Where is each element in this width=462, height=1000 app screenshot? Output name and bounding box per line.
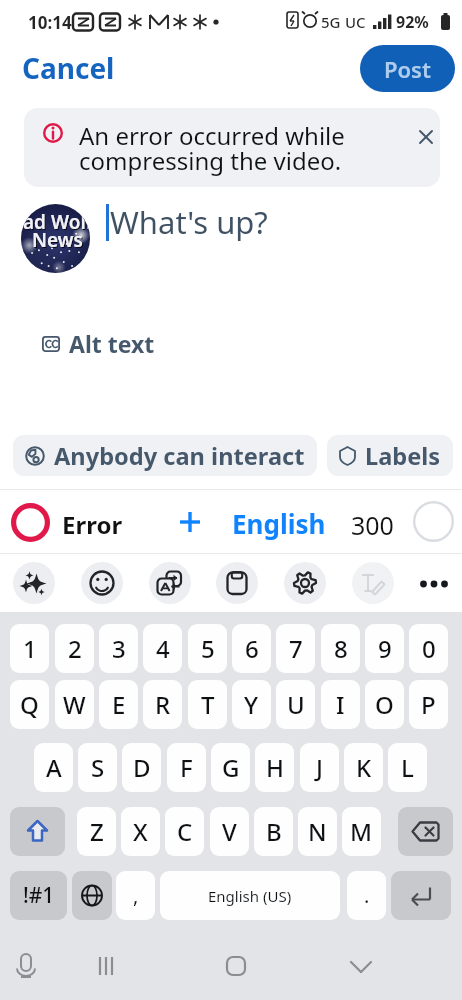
button[interactable]: 7 [276, 624, 315, 673]
button[interactable]: AI suggestions [13, 562, 55, 604]
staticText: Cancel [22, 49, 115, 87]
staticText: Post [384, 54, 431, 84]
staticText: 5G [321, 12, 341, 32]
button[interactable]: Avatar [21, 204, 90, 273]
staticText: N [308, 815, 327, 848]
staticText: X [133, 815, 148, 848]
button[interactable]: P [409, 680, 448, 729]
staticText: 4 [156, 632, 170, 665]
button[interactable]: Cancel [20, 47, 117, 89]
staticText: News [32, 227, 90, 253]
button[interactable]: Labels [327, 435, 453, 476]
button[interactable]: Rich text [352, 562, 394, 604]
button[interactable]: back [398, 807, 453, 856]
staticText: U [287, 688, 305, 721]
button[interactable]: I [321, 680, 360, 729]
button[interactable]: 5 [188, 624, 227, 673]
button[interactable]: 8 [321, 624, 360, 673]
staticText: W [63, 688, 86, 721]
staticText: 2 [68, 632, 82, 665]
button[interactable]: D [122, 743, 161, 792]
staticText: V [222, 815, 237, 848]
button[interactable]: Dismiss error [412, 123, 440, 151]
button[interactable]: Post [360, 45, 455, 92]
button[interactable]: 0 [409, 624, 448, 673]
button[interactable]: 1 [10, 624, 49, 673]
button[interactable]: Y [232, 680, 271, 729]
staticText: What's up? [110, 201, 268, 243]
staticText: Y [244, 688, 259, 721]
button[interactable]: Save draft [216, 562, 258, 604]
button[interactable]: 2 [55, 624, 94, 673]
staticText: An error occurred while compressing the … [79, 119, 345, 177]
button[interactable]: English [232, 506, 326, 541]
staticText: UC [345, 12, 366, 32]
staticText: F [180, 751, 193, 784]
staticText: ad Wolf [23, 209, 90, 235]
staticText: K [356, 751, 372, 784]
staticText: M [350, 815, 373, 848]
button[interactable]: Emoji [81, 562, 123, 604]
button[interactable]: Voice input [5, 945, 47, 987]
staticText: J [316, 751, 323, 784]
button[interactable]: enter [391, 871, 451, 920]
staticText: 7 [289, 632, 303, 665]
button[interactable]: Settings [284, 562, 326, 604]
button[interactable]: N [298, 807, 337, 856]
staticText: Anybody can interact [54, 440, 305, 472]
button[interactable]: T [188, 680, 227, 729]
button[interactable]: Alt text [38, 324, 159, 363]
button[interactable]: 4 [143, 624, 182, 673]
staticText: R [155, 688, 171, 721]
staticText: Q [20, 688, 39, 721]
button[interactable]: X [121, 807, 160, 856]
button[interactable]: M [342, 807, 381, 856]
button[interactable]: English (US) [160, 871, 340, 920]
button[interactable]: Home [215, 945, 257, 987]
button[interactable]: G [211, 743, 250, 792]
button[interactable]: 9 [365, 624, 404, 673]
button[interactable]: Add language [178, 510, 202, 534]
button[interactable]: J [300, 743, 339, 792]
staticText: Error [62, 508, 123, 541]
staticText: !#1 [23, 881, 55, 910]
button[interactable]: shift [10, 807, 65, 856]
button[interactable]: U [276, 680, 315, 729]
staticText: 300 [351, 508, 394, 542]
button[interactable]: A [34, 743, 73, 792]
button[interactable]: . [347, 871, 386, 920]
button[interactable]: K [344, 743, 383, 792]
button[interactable]: Anybody can interact [13, 435, 317, 476]
button[interactable]: !#1 [10, 871, 67, 920]
button[interactable]: More options [419, 569, 449, 599]
staticText: , [133, 882, 139, 909]
staticText: Z [90, 815, 104, 848]
staticText: 9 [378, 632, 392, 665]
button[interactable]: , [116, 871, 155, 920]
button[interactable]: V [210, 807, 249, 856]
button[interactable]: W [55, 680, 94, 729]
staticText: T [201, 688, 215, 721]
button[interactable]: Z [77, 807, 116, 856]
button[interactable]: R [143, 680, 182, 729]
button[interactable]: S [78, 743, 117, 792]
button[interactable]: 3 [99, 624, 138, 673]
button[interactable]: B [254, 807, 293, 856]
button[interactable]: C [165, 807, 204, 856]
button[interactable]: Translate [149, 562, 191, 604]
button[interactable]: Q [10, 680, 49, 729]
button[interactable]: F [167, 743, 206, 792]
staticText: I [336, 688, 345, 721]
button[interactable]: 6 [232, 624, 271, 673]
staticText: P [421, 688, 436, 721]
button[interactable]: O [365, 680, 404, 729]
button[interactable]: Hide keyboard [340, 945, 382, 987]
button[interactable]: E [99, 680, 138, 729]
button[interactable]: L [388, 743, 427, 792]
button[interactable]: Recent apps [85, 945, 127, 987]
staticText: . [364, 882, 370, 909]
staticText: Labels [365, 440, 441, 472]
button[interactable]: H [255, 743, 294, 792]
staticText: C [177, 815, 193, 848]
button[interactable]: globe [72, 871, 112, 920]
